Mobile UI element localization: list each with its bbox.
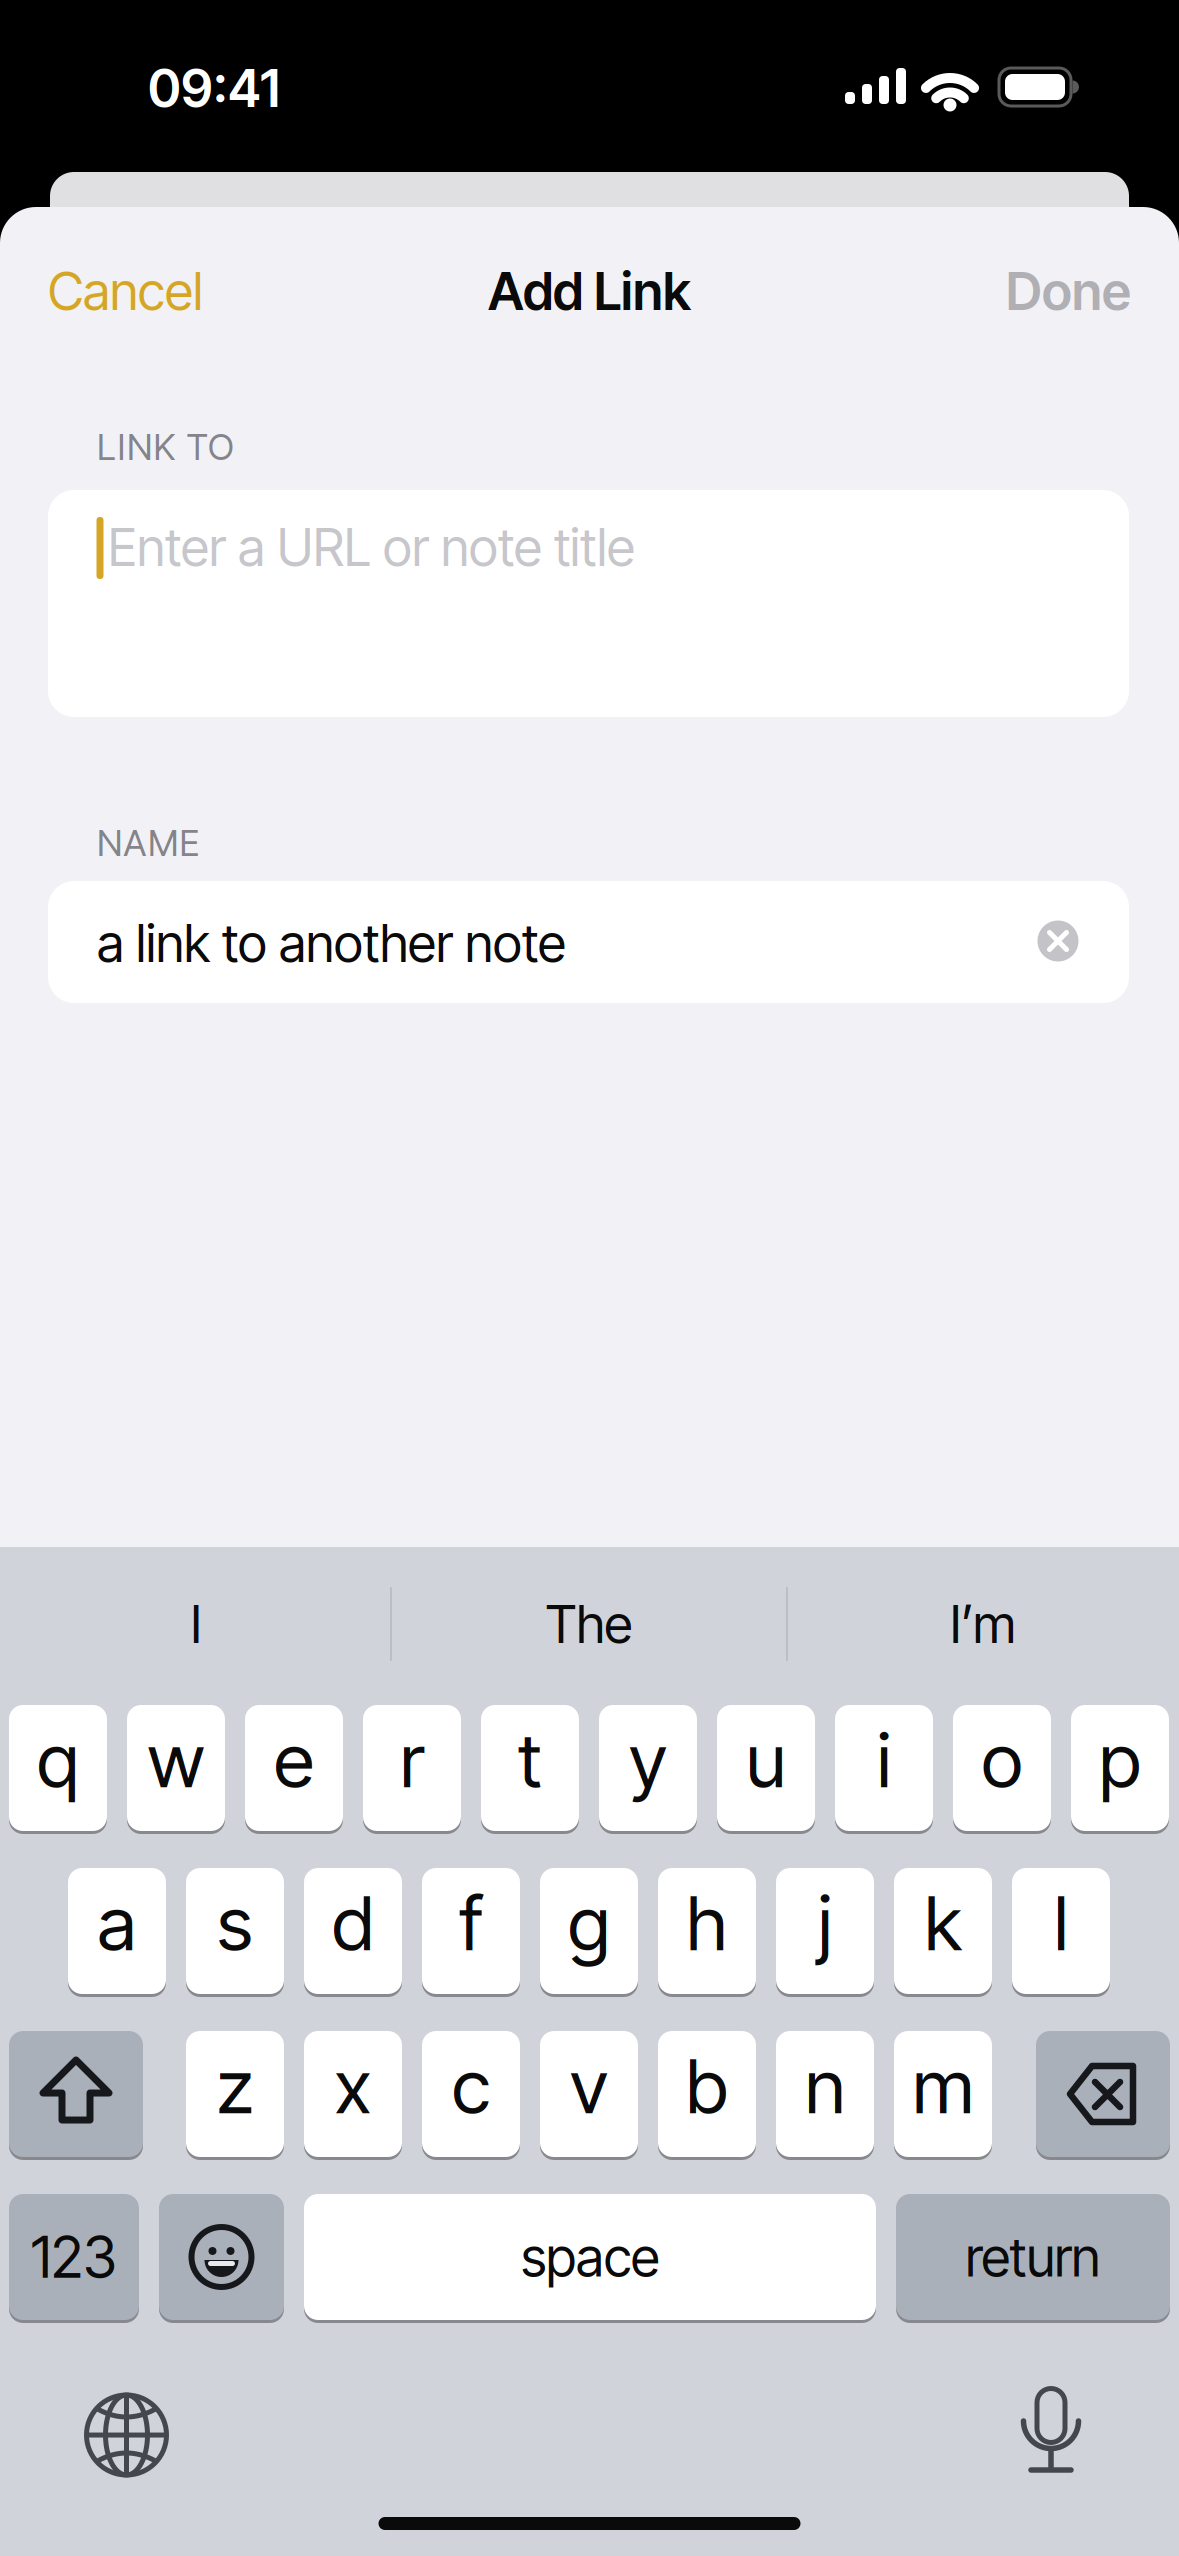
button[interactable]: w xyxy=(127,1703,225,1832)
staticText: 123 xyxy=(31,2222,117,2292)
staticText: I’m xyxy=(950,1592,1016,1655)
staticText: d xyxy=(332,1878,374,1968)
button[interactable]: a link to another note xyxy=(48,881,1129,1003)
staticText: space xyxy=(521,2225,659,2289)
staticText: Done xyxy=(1006,259,1131,322)
staticText: g xyxy=(568,1878,610,1968)
button[interactable]: s xyxy=(186,1866,284,1995)
button[interactable]: f xyxy=(422,1866,520,1995)
staticText: b xyxy=(686,2041,728,2131)
button[interactable]: I xyxy=(6,1579,386,1669)
button[interactable]: p xyxy=(1071,1703,1169,1832)
button[interactable]: h xyxy=(658,1866,756,1995)
staticText: l xyxy=(1054,1878,1068,1968)
button[interactable]: Shift xyxy=(9,2029,143,2158)
button[interactable]: v xyxy=(540,2029,638,2158)
staticText: p xyxy=(1099,1715,1141,1805)
staticText: f xyxy=(459,1878,482,1968)
button[interactable]: j xyxy=(776,1866,874,1995)
button[interactable]: y xyxy=(599,1703,697,1832)
button[interactable]: e xyxy=(245,1703,343,1832)
button[interactable]: Cancel xyxy=(48,259,203,322)
staticText: u xyxy=(746,1715,786,1805)
staticText: i xyxy=(877,1715,891,1805)
staticText: t xyxy=(518,1715,542,1805)
staticText: n xyxy=(805,2041,845,2131)
staticText: j xyxy=(818,1878,832,1968)
staticText: Add Link xyxy=(488,259,691,322)
staticText: s xyxy=(217,1878,253,1968)
button[interactable]: 123 xyxy=(9,2192,139,2321)
button[interactable]: Delete xyxy=(1036,2029,1170,2158)
button[interactable]: Dictation xyxy=(996,2377,1106,2487)
button[interactable]: b xyxy=(658,2029,756,2158)
button[interactable]: Emoji xyxy=(159,2192,284,2321)
staticText: LINK TO xyxy=(97,425,234,469)
staticText: w xyxy=(147,1715,204,1805)
staticText: x xyxy=(334,2041,371,2131)
button[interactable]: The xyxy=(399,1579,779,1669)
staticText: v xyxy=(570,2041,608,2131)
button[interactable]: return xyxy=(896,2192,1170,2321)
staticText: z xyxy=(216,2041,253,2131)
staticText: I xyxy=(190,1592,201,1655)
button[interactable]: l xyxy=(1012,1866,1110,1995)
button[interactable]: space xyxy=(304,2192,876,2321)
button[interactable]: k xyxy=(894,1866,992,1995)
staticText: q xyxy=(37,1715,79,1805)
button[interactable]: I’m xyxy=(793,1579,1173,1669)
button[interactable]: z xyxy=(186,2029,284,2158)
button[interactable]: n xyxy=(776,2029,874,2158)
staticText: h xyxy=(686,1878,727,1968)
staticText: NAME xyxy=(97,821,199,865)
button[interactable]: Enter a URL or note title xyxy=(48,490,1129,717)
button[interactable]: c xyxy=(422,2029,520,2158)
staticText: e xyxy=(274,1715,314,1805)
staticText: Cancel xyxy=(48,259,203,322)
staticText: a xyxy=(97,1878,136,1968)
staticText: return xyxy=(965,2225,1100,2289)
staticText: o xyxy=(981,1715,1022,1805)
staticText: r xyxy=(400,1715,424,1805)
button[interactable]: Clear text xyxy=(1037,920,1078,961)
staticText: Enter a URL or note title xyxy=(108,515,635,578)
staticText: 09:41 xyxy=(148,56,280,119)
button[interactable]: r xyxy=(363,1703,461,1832)
staticText: k xyxy=(924,1878,961,1968)
button[interactable]: t xyxy=(481,1703,579,1832)
button[interactable]: o xyxy=(953,1703,1051,1832)
staticText: The xyxy=(545,1592,632,1655)
staticText: y xyxy=(629,1715,667,1805)
button[interactable]: g xyxy=(540,1866,638,1995)
button[interactable]: q xyxy=(9,1703,107,1832)
staticText: m xyxy=(912,2041,973,2131)
button[interactable]: i xyxy=(835,1703,933,1832)
staticText: c xyxy=(452,2041,490,2131)
button[interactable]: u xyxy=(717,1703,815,1832)
button[interactable]: d xyxy=(304,1866,402,1995)
button[interactable]: m xyxy=(894,2029,992,2158)
button[interactable]: Done xyxy=(1006,259,1131,322)
button[interactable]: x xyxy=(304,2029,402,2158)
button[interactable]: a xyxy=(68,1866,166,1995)
staticText: a link to another note xyxy=(97,911,566,974)
button[interactable]: Switch keyboard xyxy=(71,2380,181,2490)
